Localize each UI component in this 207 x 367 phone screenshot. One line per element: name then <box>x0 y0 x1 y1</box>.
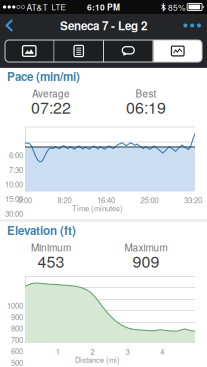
staticText: 10:00 <box>5 179 23 190</box>
staticText: Seneca 7 - Leg 2 <box>60 17 147 34</box>
staticText: LTE <box>48 1 66 13</box>
staticText: 25:00 <box>140 194 158 205</box>
staticText: 85% <box>166 1 187 13</box>
button[interactable]: More options <box>173 14 207 37</box>
staticText: 6:10 PM <box>87 1 120 13</box>
staticText: 15:00 <box>5 193 23 204</box>
button[interactable]: Splits <box>54 40 103 62</box>
staticText: 3 <box>125 346 129 357</box>
staticText: 900 <box>11 311 23 322</box>
staticText: Maximum <box>124 240 167 254</box>
button[interactable]: Back <box>0 14 24 37</box>
staticText: 600 <box>11 346 23 356</box>
staticText: Distance (mi) <box>75 354 120 365</box>
staticText: 800 <box>11 323 23 334</box>
staticText: 6:00 <box>9 150 23 160</box>
staticText: 2 <box>91 346 95 357</box>
button[interactable]: Laps <box>104 40 152 62</box>
staticText: 453 <box>37 249 64 272</box>
staticText: Minimum <box>31 240 71 254</box>
staticText: 33:20 <box>184 194 202 205</box>
staticText: Average <box>32 86 70 100</box>
staticText: 8:20 <box>57 194 71 205</box>
staticText: 700 <box>11 334 23 345</box>
staticText: 4 <box>160 346 164 357</box>
button[interactable]: Map <box>5 40 53 62</box>
staticText: Time (minutes) <box>72 202 123 213</box>
staticText: Elevation (ft) <box>7 222 76 239</box>
staticText: Best <box>135 86 156 100</box>
staticText: 07:22 <box>31 95 71 118</box>
staticText: Pace (min/mi) <box>7 68 80 85</box>
staticText: 909 <box>132 249 159 272</box>
staticText: 500 <box>11 357 23 367</box>
staticText: 1 <box>56 346 60 357</box>
staticText: 16:40 <box>97 194 115 205</box>
staticText: 06:19 <box>126 95 166 118</box>
staticText: 1000 <box>7 300 23 311</box>
staticText: 30:00 <box>5 208 23 219</box>
staticText: AT&T <box>25 1 48 13</box>
button[interactable]: Charts <box>153 40 202 62</box>
staticText: 7:30 <box>9 164 23 175</box>
staticText: 0:00 <box>18 194 32 205</box>
